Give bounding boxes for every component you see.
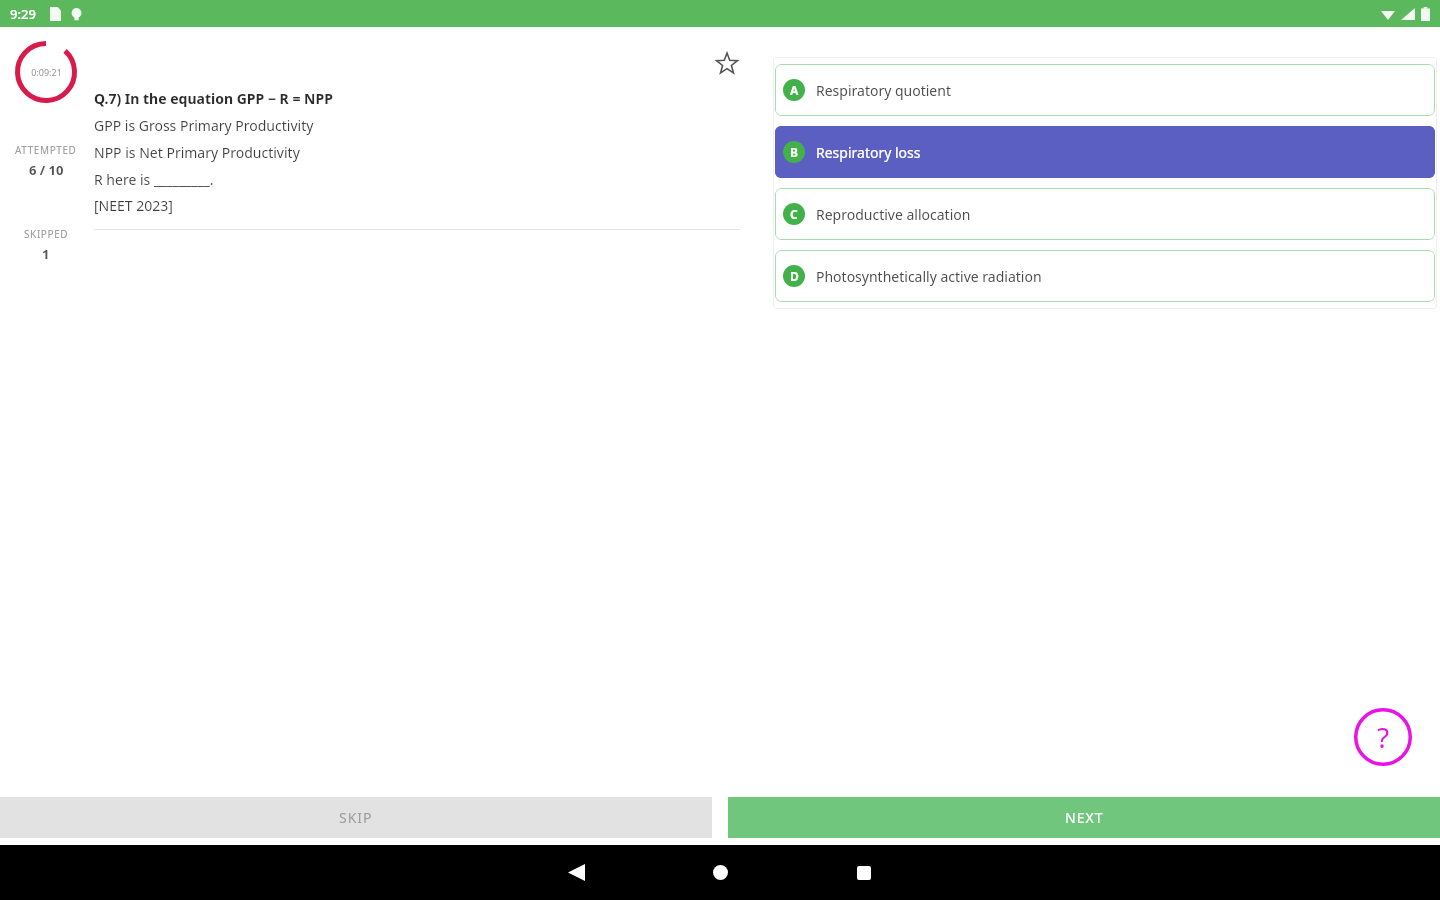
staticText: Q.7) In the equation GPP − R = NPP <box>94 89 333 108</box>
staticText: ? <box>1377 718 1390 756</box>
staticText: ATTEMPTED <box>15 143 77 157</box>
staticText: 6 / 10 <box>29 161 64 179</box>
button[interactable]: Recents <box>792 845 936 900</box>
staticText: 9:29 <box>10 5 36 23</box>
staticText: NPP is Net Primary Productivity <box>94 143 300 162</box>
staticText: D <box>790 268 799 284</box>
button[interactable]: Home <box>648 845 792 900</box>
button[interactable]: Back <box>504 845 648 900</box>
staticText: SKIPPED <box>24 227 69 241</box>
staticText: Respiratory quotient <box>816 81 951 100</box>
staticText: NEXT <box>1065 808 1104 827</box>
staticText: B <box>790 144 798 160</box>
staticText: 1 <box>42 245 50 263</box>
staticText: [NEET 2023] <box>94 196 173 215</box>
button[interactable]: A <box>775 64 1435 116</box>
staticText: Reproductive allocation <box>816 205 971 224</box>
staticText: 0:09:21 <box>31 66 62 78</box>
button[interactable]: D <box>775 250 1435 302</box>
staticText: SKIP <box>339 808 373 827</box>
button[interactable]: NEXT <box>728 797 1440 838</box>
staticText: R here is _________. <box>94 170 214 189</box>
staticText: C <box>790 206 798 222</box>
staticText: GPP is Gross Primary Productivity <box>94 116 314 135</box>
staticText: Respiratory loss <box>816 143 921 162</box>
button[interactable]: C <box>775 188 1435 240</box>
staticText: Photosynthetically active radiation <box>816 267 1042 286</box>
button[interactable]: B <box>775 126 1435 178</box>
button[interactable]: SKIP <box>0 797 712 838</box>
button[interactable]: Bookmark question <box>712 49 742 79</box>
button[interactable]: Help <box>1352 706 1414 768</box>
staticText: A <box>790 82 799 98</box>
